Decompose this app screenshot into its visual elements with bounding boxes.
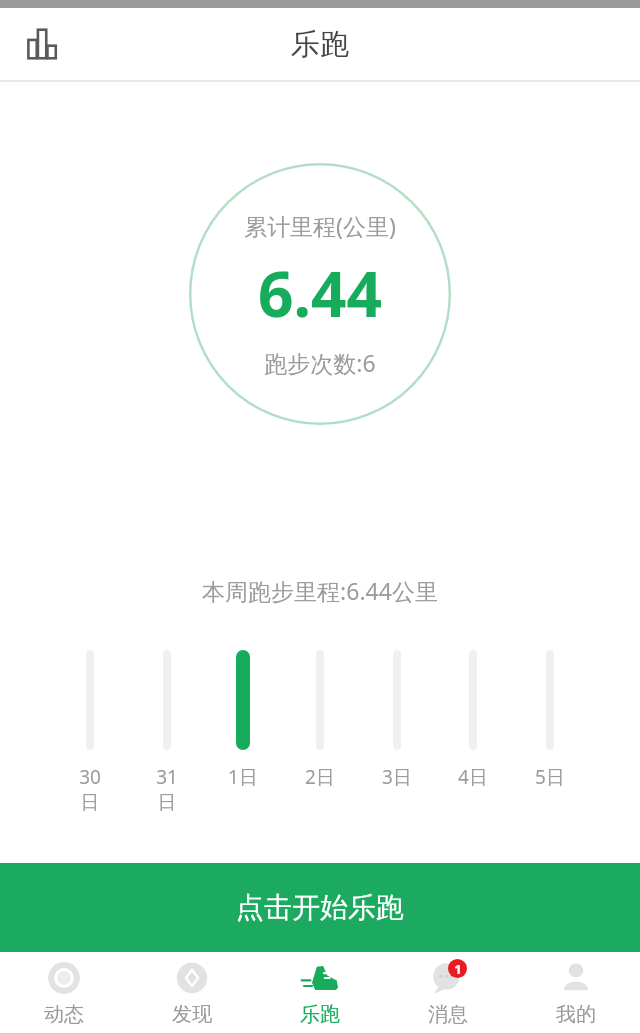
staticText: 乐跑 (300, 1002, 340, 1027)
staticText: 30日 (71, 764, 109, 815)
staticText: 发现 (172, 1002, 212, 1027)
button[interactable]: 发现 (128, 952, 256, 1033)
staticText: 3日 (382, 764, 412, 790)
button[interactable]: Statistics (14, 16, 70, 72)
staticText: 动态 (44, 1002, 84, 1027)
button[interactable]: 乐跑 (256, 952, 384, 1033)
staticText: 我的 (556, 1002, 596, 1027)
staticText: 31日 (148, 764, 186, 815)
button[interactable]: 1 (384, 952, 512, 1033)
staticText: 1 (454, 960, 462, 978)
staticText: 点击开始乐跑 (236, 890, 404, 925)
staticText: 跑步次数:6 (264, 347, 376, 378)
staticText: 6.44 (258, 251, 382, 335)
staticText: 5日 (535, 764, 565, 790)
staticText: 本周跑步里程:6.44公里 (202, 575, 438, 606)
button[interactable]: 动态 (0, 952, 128, 1033)
button[interactable]: 点击开始乐跑 (0, 863, 640, 952)
button[interactable]: 我的 (512, 952, 640, 1033)
staticText: 累计里程(公里) (244, 210, 396, 241)
staticText: 2日 (305, 764, 335, 790)
staticText: 乐跑 (291, 26, 349, 63)
staticText: 消息 (428, 1002, 468, 1027)
staticText: 4日 (458, 764, 488, 790)
staticText: 1日 (228, 764, 258, 790)
